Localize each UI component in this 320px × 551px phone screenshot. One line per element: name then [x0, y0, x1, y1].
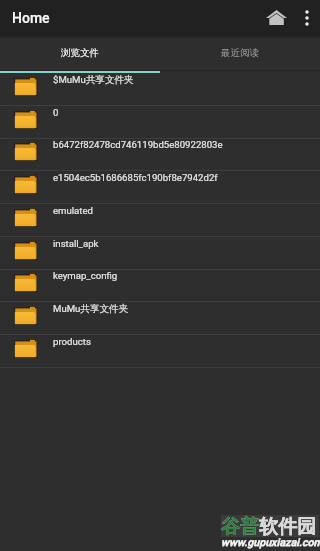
staticText: 最近阅读 [221, 47, 259, 59]
button[interactable]: $MuMu共享文件夹 [0, 73, 320, 106]
staticText: MuMu共享文件夹 [53, 303, 129, 315]
staticText: 软件园 [259, 515, 316, 539]
staticText: 谷普 [221, 515, 259, 539]
staticText: 浏览文件 [61, 47, 99, 59]
staticText: emulated [53, 205, 93, 216]
button[interactable]: e1504ec5b1686685fc190bf8e7942d2f [0, 171, 320, 204]
staticText: www.gupuxiazai.com [221, 536, 320, 549]
button[interactable]: MuMu共享文件夹 [0, 302, 320, 335]
staticText: keymap_config [53, 270, 118, 281]
button[interactable]: Home [258, 0, 294, 36]
button[interactable]: 浏览文件 [0, 36, 160, 70]
button[interactable]: 最近阅读 [160, 36, 320, 70]
staticText: 0 [53, 107, 59, 118]
staticText: products [53, 336, 91, 347]
button[interactable]: More options [293, 0, 318, 36]
staticText: Home [12, 10, 50, 26]
button[interactable]: install_apk [0, 237, 320, 270]
staticText: 软件园 [259, 515, 316, 539]
button[interactable]: products [0, 335, 320, 368]
staticText: 谷普 [221, 515, 259, 539]
button[interactable]: 0 [0, 106, 320, 139]
staticText: install_apk [53, 238, 99, 249]
button[interactable]: emulated [0, 204, 320, 237]
staticText: $MuMu共享文件夹 [53, 74, 134, 86]
staticText: e1504ec5b1686685fc190bf8e7942d2f [53, 172, 218, 183]
staticText: b6472f82478cd746119bd5e80922803e [53, 139, 223, 150]
button[interactable]: keymap_config [0, 269, 320, 302]
button[interactable]: b6472f82478cd746119bd5e80922803e [0, 138, 320, 171]
